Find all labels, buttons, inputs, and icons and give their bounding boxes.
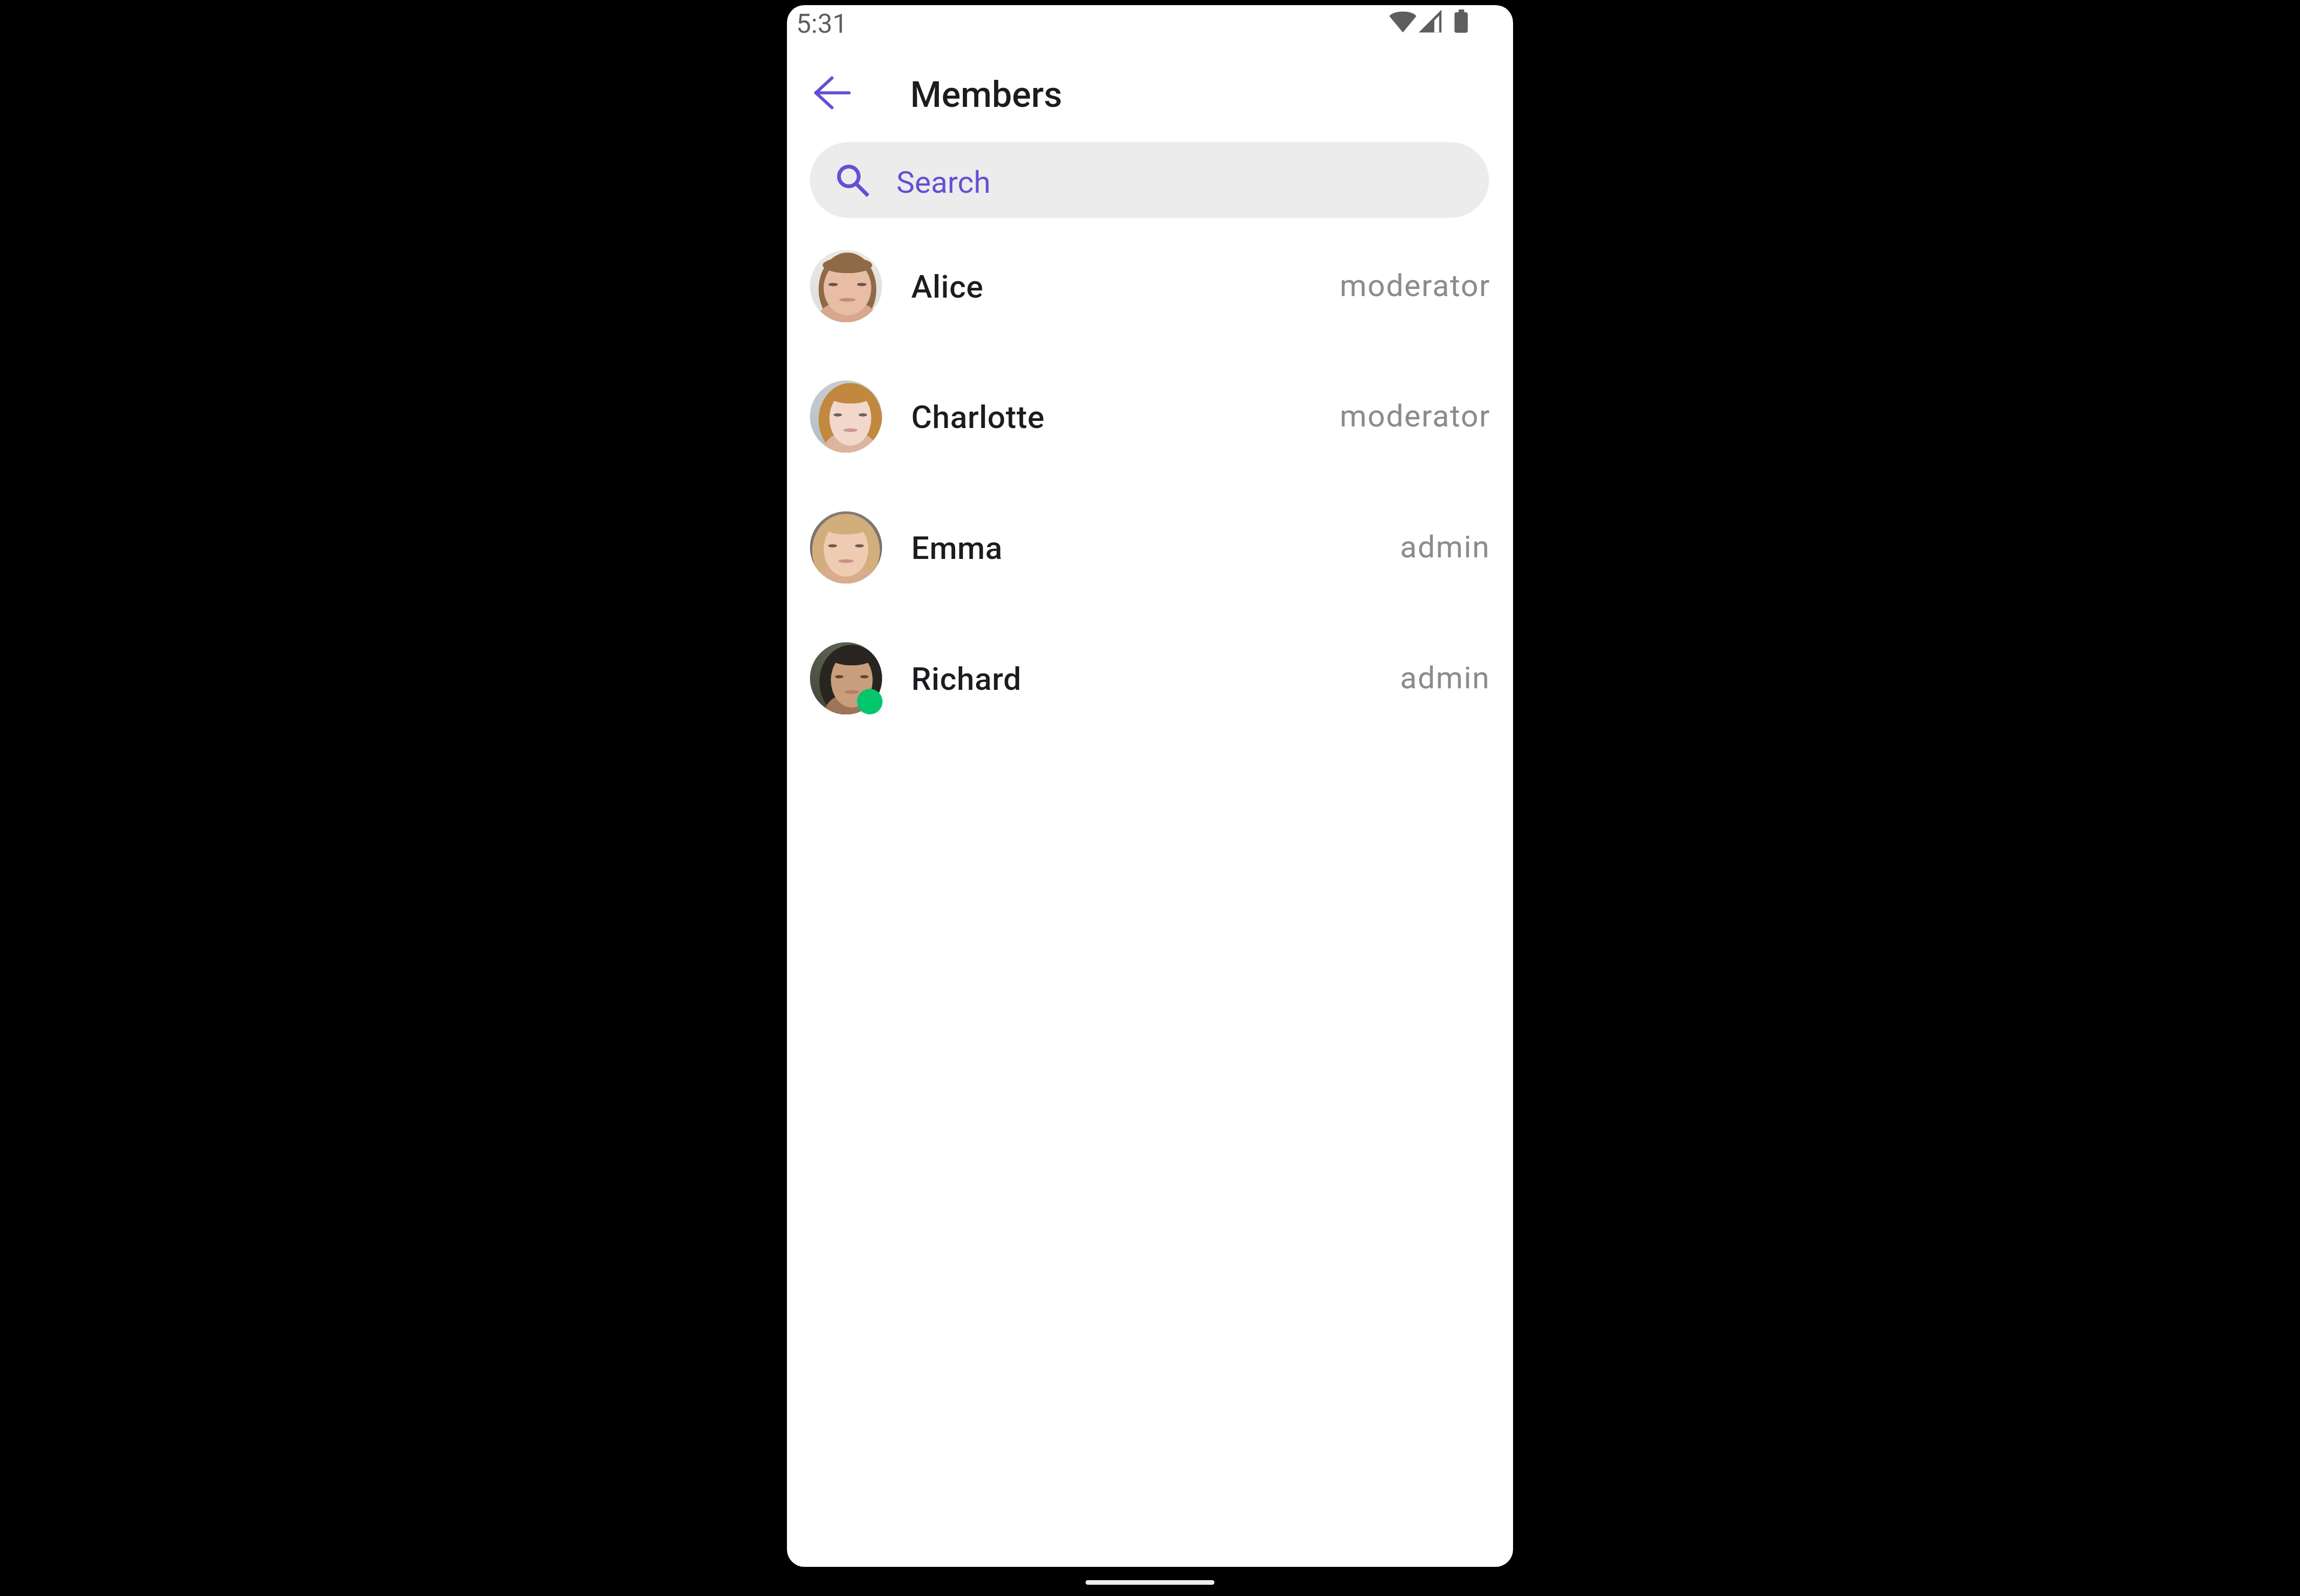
button[interactable]: Charlotte	[787, 351, 1513, 482]
staticText: moderator	[1340, 267, 1491, 303]
staticText: Members	[910, 74, 1063, 116]
staticText: Emma	[911, 529, 1003, 567]
button[interactable]: Back	[796, 56, 869, 130]
staticText: Richard	[911, 660, 1022, 698]
staticText: 5:31	[796, 8, 848, 39]
button[interactable]: Alice	[787, 220, 1513, 351]
staticText: moderator	[1340, 398, 1491, 434]
button[interactable]: Richard	[787, 613, 1513, 744]
button[interactable]: Search	[810, 142, 1489, 218]
button[interactable]: Emma	[787, 482, 1513, 613]
staticText: admin	[1400, 529, 1491, 565]
staticText: Alice	[911, 268, 984, 305]
staticText: admin	[1400, 660, 1491, 695]
staticText: Charlotte	[911, 398, 1045, 436]
staticText: Search	[896, 164, 991, 200]
